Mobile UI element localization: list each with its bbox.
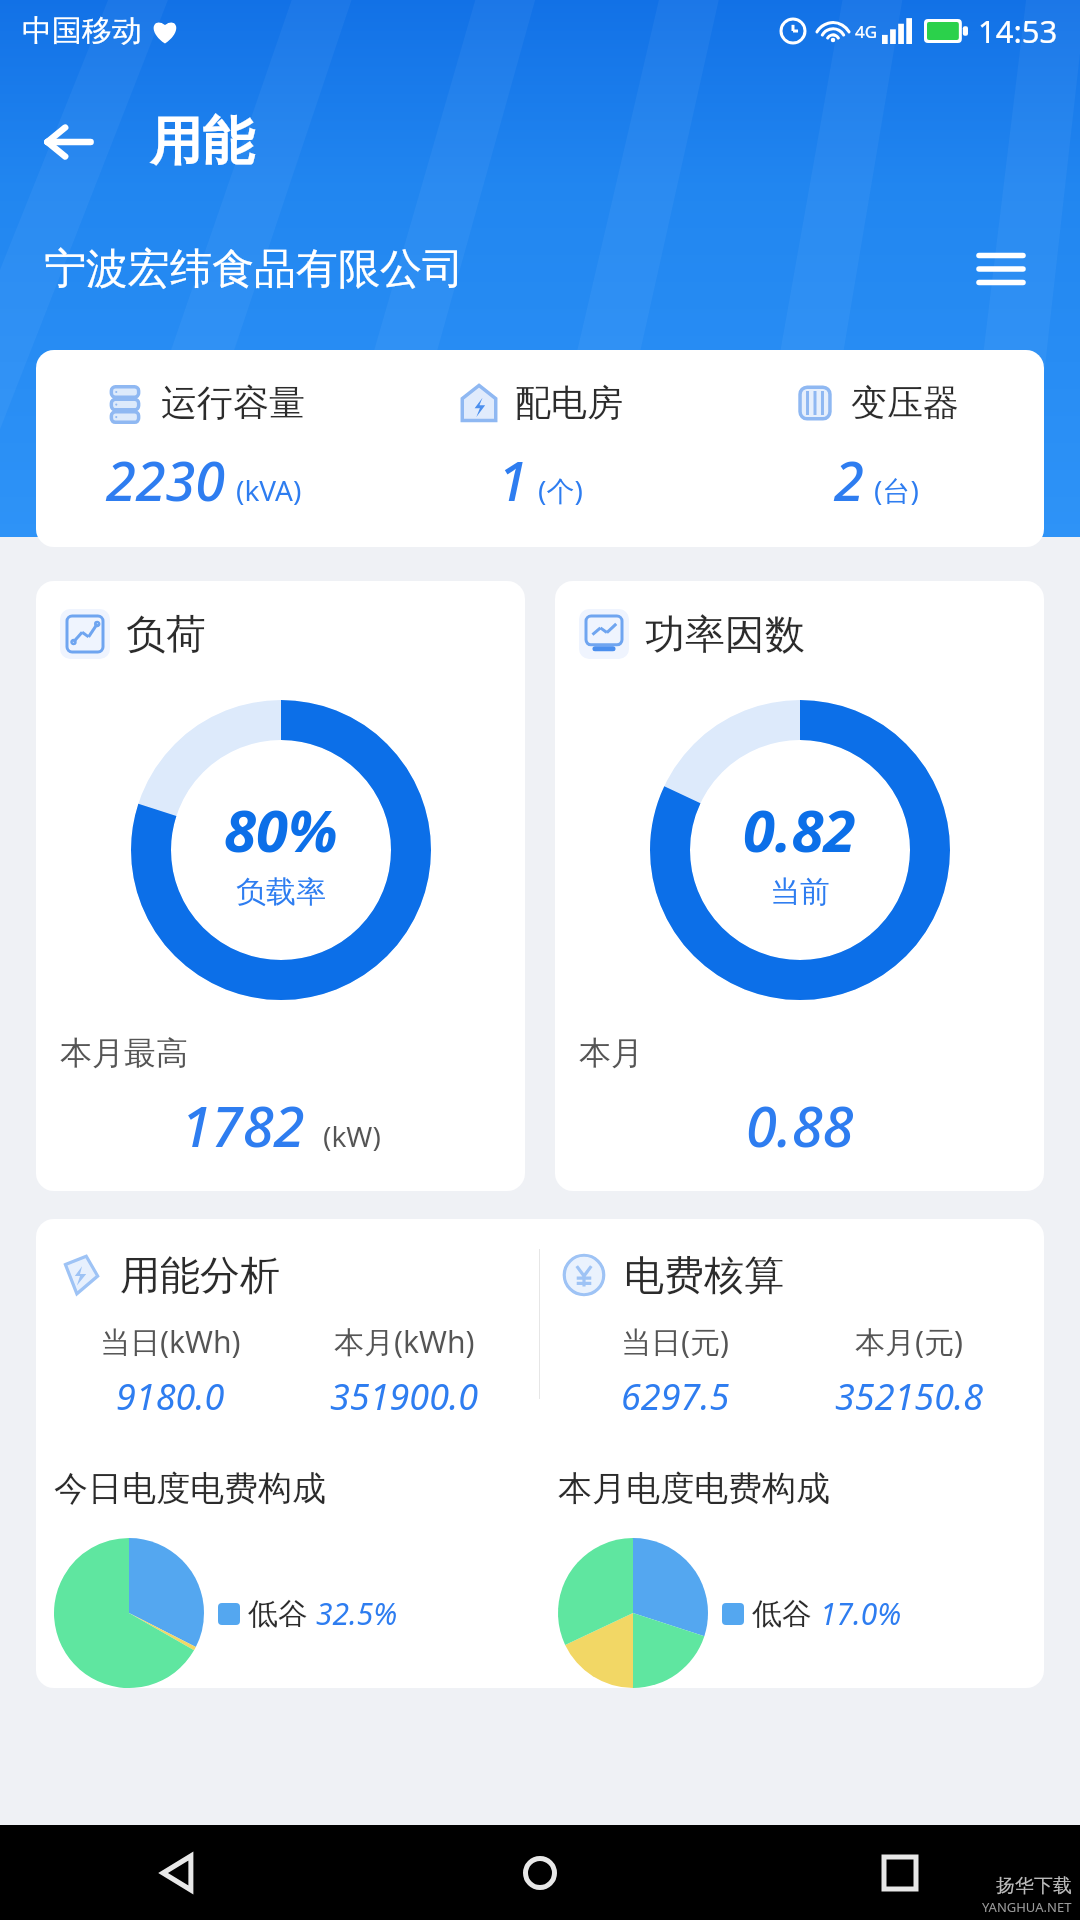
- button[interactable]: 用能分析: [36, 1219, 1044, 1688]
- staticText: 32.5%: [316, 1593, 398, 1634]
- staticText: 今日电度电费构成: [54, 1467, 326, 1510]
- staticText: 扬华下载: [996, 1874, 1072, 1898]
- button[interactable]: Back: [143, 1836, 217, 1910]
- staticText: 352150.8: [835, 1372, 984, 1421]
- staticText: 本月最高: [60, 1033, 188, 1073]
- staticText: 功率因数: [645, 609, 805, 659]
- staticText: 351900.0: [330, 1372, 479, 1421]
- staticText: 9180.0: [116, 1372, 225, 1421]
- button[interactable]: Recents: [863, 1836, 937, 1910]
- button[interactable]: 负荷: [36, 581, 525, 1191]
- staticText: 2230: [106, 443, 226, 517]
- staticText: 中国移动: [22, 12, 142, 50]
- staticText: 0.88: [746, 1087, 854, 1163]
- staticText: 负荷: [126, 609, 206, 659]
- staticText: (kW): [323, 1117, 381, 1155]
- staticText: (kVA): [236, 471, 302, 509]
- staticText: 17.0%: [820, 1593, 902, 1634]
- staticText: 80%: [224, 790, 338, 869]
- staticText: 4G: [855, 20, 878, 43]
- staticText: 0.82: [743, 790, 856, 869]
- staticText: 用能: [150, 109, 254, 175]
- staticText: 本月(元): [855, 1321, 963, 1362]
- staticText: 6297.5: [621, 1372, 730, 1421]
- staticText: 当日(kWh): [100, 1321, 241, 1362]
- staticText: (个): [538, 471, 583, 509]
- staticText: 1: [498, 443, 528, 517]
- staticText: 1782: [181, 1087, 305, 1163]
- button[interactable]: 功率因数: [555, 581, 1044, 1191]
- staticText: 低谷: [248, 1595, 308, 1633]
- staticText: 本月电度电费构成: [558, 1467, 830, 1510]
- staticText: 14:53: [978, 10, 1058, 52]
- staticText: YANGHUA.NET: [982, 1898, 1072, 1916]
- staticText: 本月(kWh): [334, 1321, 475, 1362]
- staticText: 变压器: [851, 380, 959, 425]
- staticText: 低谷: [752, 1595, 812, 1633]
- button[interactable]: 运行容量: [36, 350, 1044, 547]
- staticText: 2: [834, 443, 864, 517]
- button[interactable]: Home: [503, 1836, 577, 1910]
- staticText: 本月: [579, 1033, 643, 1073]
- button[interactable]: Menu: [966, 234, 1036, 304]
- staticText: (台): [874, 471, 919, 509]
- button[interactable]: Back: [34, 107, 104, 177]
- staticText: 用能分析: [120, 1250, 280, 1300]
- staticText: 当日(元): [621, 1321, 729, 1362]
- staticText: 宁波宏纬食品有限公司: [44, 243, 464, 296]
- staticText: 运行容量: [161, 380, 305, 425]
- staticText: 电费核算: [624, 1250, 784, 1300]
- staticText: 配电房: [515, 380, 623, 425]
- staticText: 负载率: [236, 873, 326, 911]
- staticText: 当前: [770, 873, 830, 911]
